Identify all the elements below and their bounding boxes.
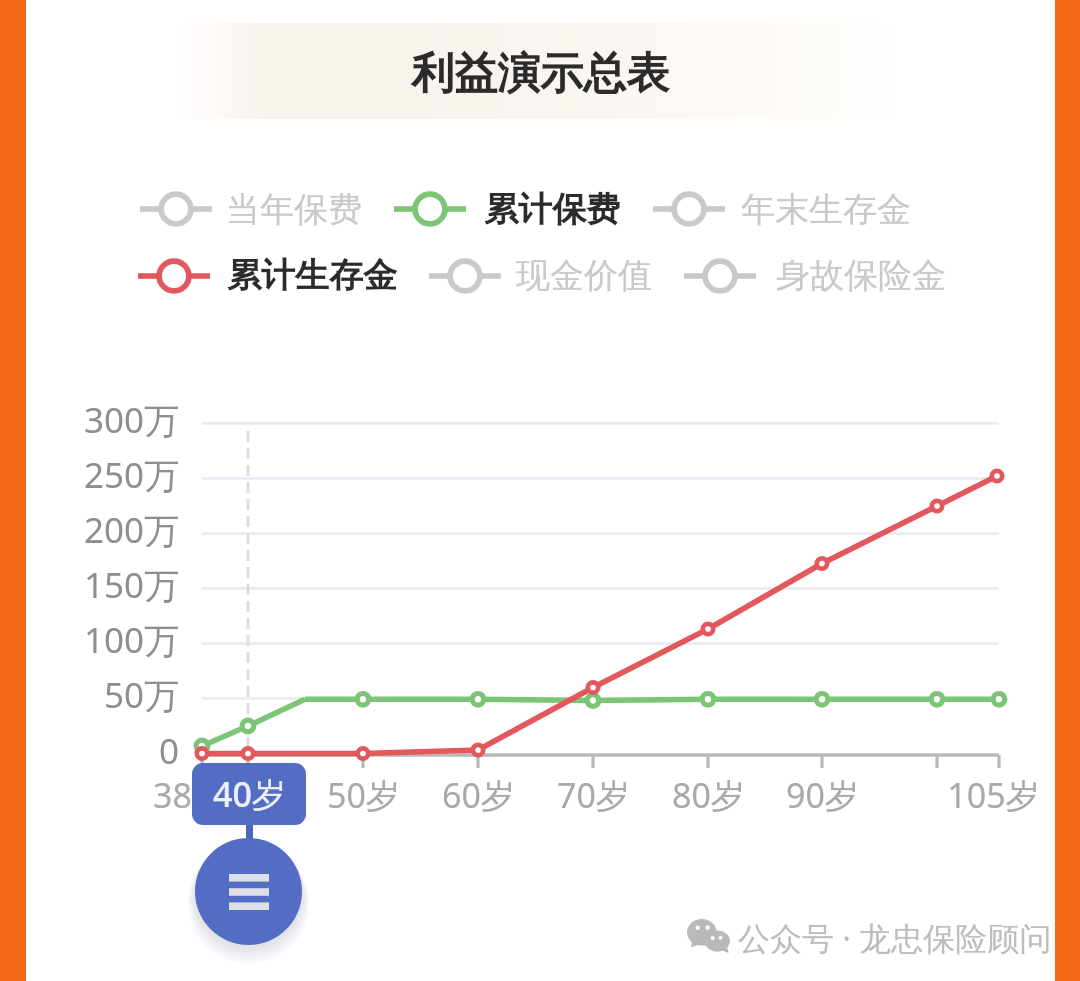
staticText: 累计保费: [484, 188, 620, 230]
staticText: 40岁: [213, 771, 286, 817]
staticText: 公众号 · 龙忠保险顾问: [738, 916, 1052, 960]
staticText: 105岁: [947, 772, 1040, 818]
button[interactable]: 当年保费: [226, 188, 362, 230]
staticText: 利益演示总表: [0, 47, 1080, 101]
staticText: 现金价值: [516, 254, 652, 296]
button[interactable]: 现金价值: [516, 254, 652, 296]
button[interactable]: Menu: [195, 838, 302, 945]
staticText: 身故保险金: [776, 254, 946, 296]
staticText: 40岁: [216, 772, 289, 818]
button[interactable]: 40岁: [192, 763, 306, 825]
staticText: 150万: [84, 561, 180, 609]
staticText: 当年保费: [226, 188, 362, 230]
staticText: 50岁: [327, 772, 400, 818]
staticText: 70岁: [557, 772, 630, 818]
button[interactable]: 累计保费: [484, 188, 620, 230]
staticText: 300万: [84, 396, 180, 444]
button[interactable]: 累计生存金: [227, 254, 397, 296]
staticText: 80岁: [672, 772, 745, 818]
button[interactable]: 年末生存金: [741, 188, 911, 230]
button[interactable]: 身故保险金: [776, 254, 946, 296]
staticText: 100万: [84, 616, 180, 664]
staticText: 0: [159, 727, 180, 775]
staticText: 60岁: [442, 772, 515, 818]
staticText: 年末生存金: [741, 188, 911, 230]
staticText: 累计生存金: [227, 254, 397, 296]
staticText: 250万: [84, 451, 180, 499]
staticText: 200万: [84, 506, 180, 554]
staticText: 38: [153, 772, 192, 818]
staticText: 50万: [104, 671, 180, 719]
staticText: 90岁: [786, 772, 859, 818]
